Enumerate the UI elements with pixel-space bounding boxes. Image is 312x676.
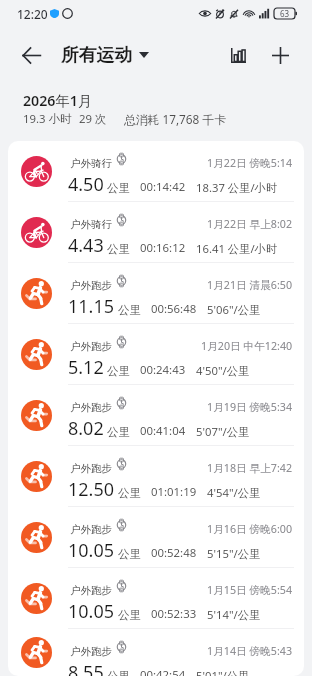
staticText: 4.50 (68, 172, 104, 197)
staticText: 00:16:12 (140, 240, 186, 256)
button[interactable]: 户外跑步 (8, 446, 304, 507)
staticText: 公里 (118, 486, 141, 500)
button[interactable]: 户外跑步 (8, 568, 304, 629)
staticText: 10.05 (68, 538, 115, 563)
button[interactable]: 所有运动 (61, 44, 149, 66)
button[interactable]: 户外跑步 (8, 507, 304, 568)
button[interactable]: 户外骑行 (8, 202, 304, 263)
staticText: 1月20日 中午12:40 (201, 339, 293, 354)
staticText: 公里 (118, 547, 141, 561)
staticText: 户外骑行 (70, 218, 112, 231)
staticText: 1月14日 傍晚5:43 (207, 644, 293, 659)
staticText: 01:01:19 (151, 484, 197, 500)
staticText: 5'07"/公里 (196, 424, 250, 439)
staticText: 户外骑行 (70, 157, 112, 170)
staticText: 19.3 小时 (23, 111, 72, 127)
staticText: 2026年1月 (23, 91, 92, 110)
staticText: 10.05 (68, 599, 115, 624)
staticText: 5'14"/公里 (207, 607, 261, 622)
staticText: 00:42:54 (140, 667, 186, 676)
staticText: 11.15 (68, 294, 115, 319)
button[interactable]: Add (264, 39, 296, 71)
staticText: 1月16日 傍晚6:00 (207, 522, 293, 537)
staticText: 总消耗 17,768 千卡 (124, 111, 227, 127)
staticText: 00:24:43 (140, 362, 186, 378)
staticText: 户外跑步 (70, 523, 112, 536)
staticText: 户外跑步 (70, 462, 112, 475)
staticText: 4.43 (68, 233, 104, 258)
staticText: 1月15日 傍晚5:54 (207, 583, 293, 598)
button[interactable]: 户外跑步 (8, 324, 304, 385)
staticText: 12.50 (68, 477, 115, 502)
staticText: 5.12 (68, 355, 104, 380)
staticText: 5'15"/公里 (207, 546, 261, 561)
staticText: 00:14:42 (140, 179, 186, 195)
staticText: 1月19日 傍晚5:34 (207, 400, 293, 415)
staticText: 公里 (107, 181, 130, 195)
staticText: 5'06"/公里 (207, 302, 261, 317)
staticText: 8.02 (68, 416, 104, 441)
staticText: 公里 (107, 669, 130, 676)
staticText: 4'54"/公里 (207, 485, 261, 500)
staticText: 公里 (107, 364, 130, 378)
staticText: 1月18日 早上7:42 (207, 461, 293, 476)
button[interactable]: 户外骑行 (8, 141, 304, 202)
staticText: 1月21日 清晨6:50 (207, 278, 293, 293)
staticText: 公里 (118, 608, 141, 622)
staticText: 1月22日 早上8:02 (207, 217, 293, 232)
button[interactable]: 户外跑步 (8, 385, 304, 446)
staticText: 18.37 公里/小时 (196, 180, 278, 195)
staticText: 00:52:48 (151, 545, 197, 561)
staticText: 户外跑步 (70, 340, 112, 353)
staticText: 29 次 (79, 111, 107, 127)
staticText: 户外跑步 (70, 401, 112, 414)
button[interactable]: 户外跑步 (8, 629, 304, 676)
button[interactable]: Statistics (222, 39, 254, 71)
staticText: 公里 (107, 425, 130, 439)
staticText: 公里 (118, 303, 141, 317)
staticText: 00:52:33 (151, 606, 197, 622)
button[interactable]: Back (13, 37, 49, 73)
staticText: 16.41 公里/小时 (196, 241, 278, 256)
staticText: 4'50"/公里 (196, 363, 250, 378)
staticText: 户外跑步 (70, 279, 112, 292)
staticText: 户外跑步 (70, 584, 112, 597)
staticText: 00:41:04 (140, 423, 186, 439)
staticText: 户外跑步 (70, 645, 112, 658)
staticText: 8.55 (68, 660, 104, 676)
staticText: 所有运动 (61, 44, 133, 66)
staticText: 00:56:48 (151, 301, 197, 317)
staticText: 公里 (107, 242, 130, 256)
staticText: 12:20 (17, 6, 48, 22)
staticText: 5'01"/公里 (196, 668, 250, 676)
button[interactable]: 户外跑步 (8, 263, 304, 324)
staticText: 63 (280, 8, 290, 19)
staticText: 1月22日 傍晚5:14 (207, 156, 293, 171)
